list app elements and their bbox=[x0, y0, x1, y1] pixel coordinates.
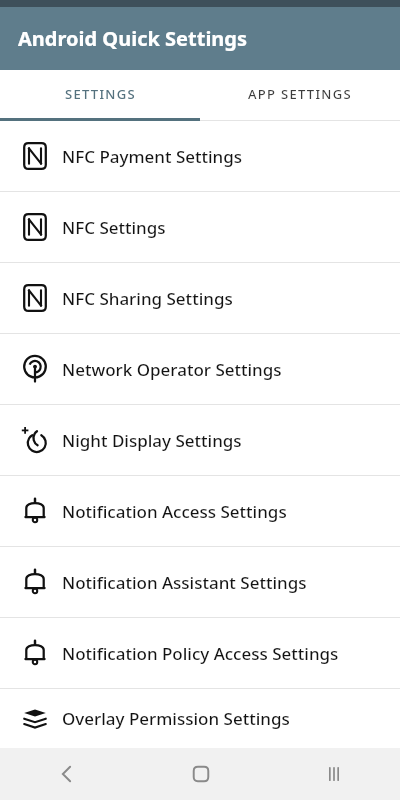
button[interactable]: Home bbox=[134, 748, 267, 800]
staticText: NFC Payment Settings bbox=[62, 145, 243, 168]
button[interactable]: Notification Policy Access Settings bbox=[0, 618, 400, 688]
button[interactable]: NFC Payment Settings bbox=[0, 121, 400, 191]
button[interactable]: Recent apps bbox=[267, 748, 400, 800]
button[interactable]: Night Display Settings bbox=[0, 405, 400, 475]
button[interactable]: NFC Sharing Settings bbox=[0, 263, 400, 333]
button[interactable]: Notification Assistant Settings bbox=[0, 547, 400, 617]
staticText: NFC Settings bbox=[62, 216, 166, 239]
staticText: Notification Access Settings bbox=[62, 500, 287, 523]
staticText: SETTINGS bbox=[65, 85, 136, 103]
staticText: Overlay Permission Settings bbox=[62, 707, 290, 730]
staticText: Night Display Settings bbox=[62, 429, 242, 452]
button[interactable]: NFC Settings bbox=[0, 192, 400, 262]
button[interactable]: Notification Access Settings bbox=[0, 476, 400, 546]
staticText: Network Operator Settings bbox=[62, 358, 282, 381]
button[interactable]: APP SETTINGS bbox=[200, 70, 400, 118]
staticText: Android Quick Settings bbox=[18, 25, 248, 52]
staticText: Notification Policy Access Settings bbox=[62, 642, 339, 665]
staticText: Notification Assistant Settings bbox=[62, 571, 307, 594]
staticText: APP SETTINGS bbox=[248, 85, 352, 103]
button[interactable]: SETTINGS bbox=[0, 70, 200, 118]
button[interactable]: Back bbox=[0, 748, 134, 800]
button[interactable]: Network Operator Settings bbox=[0, 334, 400, 404]
staticText: NFC Sharing Settings bbox=[62, 287, 233, 310]
button[interactable]: Overlay Permission Settings bbox=[0, 689, 400, 748]
